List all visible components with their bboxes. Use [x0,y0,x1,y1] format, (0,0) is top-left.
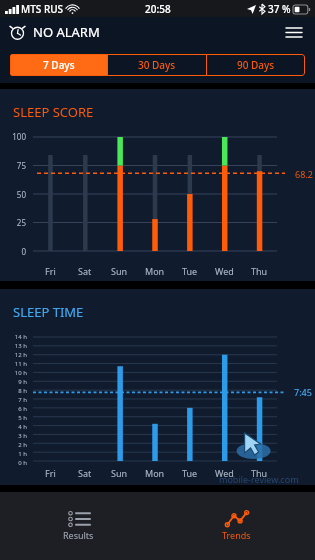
staticText: 5 h [0,414,27,422]
staticText: 9 h [0,378,27,386]
button[interactable]: NO ALARM [10,23,100,41]
staticText: 7 Days [43,58,75,72]
staticText: 100 [0,131,26,142]
button[interactable]: Results [0,492,157,560]
button[interactable]: Trends [157,492,315,560]
staticText: 3 h [0,432,27,440]
staticText: 11 h [0,360,27,368]
staticText: 68.2 [295,168,313,180]
staticText: Results [63,529,94,541]
staticText: 25 [0,217,26,228]
staticText: 13 h [0,342,27,350]
staticText: SLEEP SCORE [13,103,94,121]
staticText: Fri [45,265,56,277]
staticText: Thu [251,467,268,479]
staticText: Tue [182,265,198,277]
staticText: Sat [78,265,92,277]
staticText: 90 Days [237,58,275,72]
staticText: 50 [0,189,26,200]
staticText: 4 h [0,423,27,431]
button[interactable]: 90 Days [207,54,305,76]
staticText: Mon [145,265,165,277]
staticText: 30 Days [138,58,176,72]
staticText: 8 h [0,387,27,395]
staticText: Mon [145,467,165,479]
staticText: Trends [222,529,251,541]
staticText: 1 h [0,450,27,458]
button[interactable]: 30 Days [108,54,206,76]
staticText: NO ALARM [33,23,100,41]
staticText: MTS RUS [21,2,64,16]
staticText: 20:58 [145,2,171,16]
staticText: Sun [111,467,128,479]
staticText: 10 h [0,369,27,377]
staticText: 7:45 [294,386,312,398]
staticText: Thu [251,265,268,277]
staticText: 14 h [0,333,27,341]
staticText: Sat [78,467,92,479]
staticText: Wed [215,467,234,479]
staticText: 0 h [0,459,27,467]
staticText: Tue [182,467,198,479]
staticText: mobile-review.com [219,473,299,485]
staticText: 37 % [268,2,291,16]
staticText: 7 h [0,396,27,404]
staticText: 0 [0,246,26,257]
staticText: Sun [111,265,128,277]
staticText: Wed [215,265,234,277]
staticText: 75 [0,160,26,171]
staticText: 6 h [0,405,27,413]
button[interactable]: 7 Days [10,54,107,76]
staticText: SLEEP TIME [13,303,84,321]
staticText: 12 h [0,351,27,359]
staticText: Fri [45,467,56,479]
button[interactable]: Menu [281,19,307,45]
staticText: 2 h [0,441,27,449]
